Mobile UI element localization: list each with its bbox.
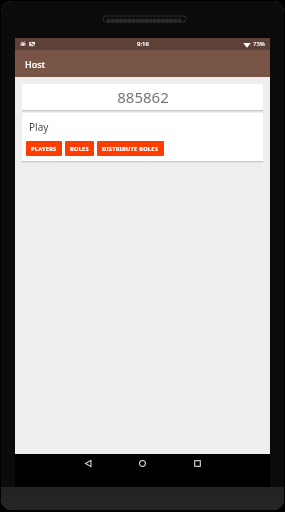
button[interactable]: PLAYERS xyxy=(26,141,62,156)
button[interactable]: ROLES xyxy=(65,141,94,156)
button[interactable]: DISTRIBUTE ROLES xyxy=(97,141,164,156)
button[interactable]: Back xyxy=(81,456,95,470)
staticText: 885862 xyxy=(117,87,169,107)
staticText: Play xyxy=(29,120,49,134)
staticText: PLAYERS xyxy=(31,145,57,153)
staticText: 9:16 xyxy=(137,40,149,48)
staticText: Host xyxy=(25,58,46,70)
button[interactable]: Home xyxy=(135,456,149,470)
staticText: 75% xyxy=(253,40,265,48)
button[interactable]: Recent apps xyxy=(190,456,204,470)
staticText: DISTRIBUTE ROLES xyxy=(102,145,159,153)
staticText: ROLES xyxy=(70,145,89,153)
